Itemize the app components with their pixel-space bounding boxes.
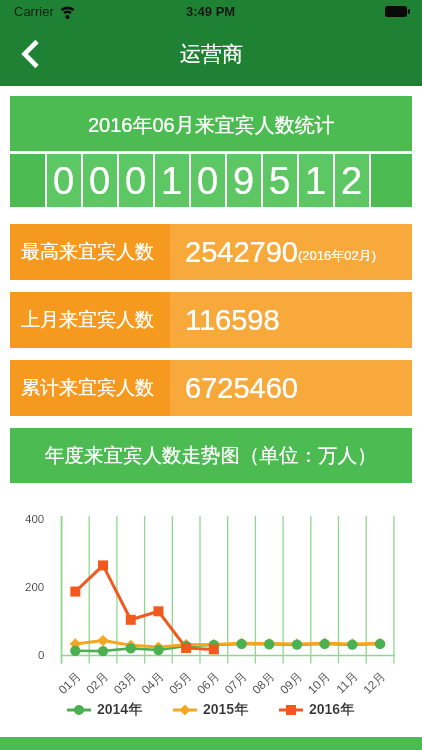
staticText: 1 (161, 160, 183, 202)
button[interactable]: 2014年 (67, 701, 143, 719)
staticText: 2016年 (309, 701, 355, 719)
staticText: (2016年02月) (298, 247, 377, 263)
staticText: 1 (305, 160, 327, 202)
button[interactable]: 2015年 (173, 701, 249, 719)
staticText: 上月来宜宾人数 (21, 308, 154, 332)
button[interactable]: 上月来宜宾人数 (10, 292, 412, 348)
staticText: 累计来宜宾人数 (21, 376, 154, 400)
staticText: 0 (53, 160, 75, 202)
button[interactable]: 2016年 (279, 701, 355, 719)
staticText: 0 (89, 160, 111, 202)
staticText: 2542790 (185, 236, 298, 268)
button[interactable]: 年度来宜宾人数走势图（单位：万人） (10, 428, 412, 483)
staticText: 116598 (185, 304, 280, 336)
button[interactable]: 累计来宜宾人数 (10, 360, 412, 416)
staticText: 0 (125, 160, 147, 202)
button[interactable] (8, 28, 52, 80)
staticText: 2015年 (203, 701, 249, 719)
staticText: 最高来宜宾人数 (21, 240, 154, 264)
staticText: 0 (197, 160, 219, 202)
staticText: 9 (233, 160, 255, 202)
staticText: 年度来宜宾人数走势图（单位：万人） (45, 443, 377, 468)
staticText: 2016年06月来宜宾人数统计 (88, 113, 335, 138)
button[interactable]: 最高来宜宾人数 (10, 224, 412, 280)
staticText: 3:49 PM (186, 4, 236, 19)
staticText: 运营商 (180, 41, 243, 67)
staticText: 6725460 (185, 372, 298, 404)
button[interactable]: 2016年06月来宜宾人数统计 (10, 96, 412, 207)
staticText: Carrier (14, 4, 54, 19)
staticText: 2 (341, 160, 363, 202)
staticText: 2014年 (97, 701, 143, 719)
staticText: 5 (269, 160, 291, 202)
